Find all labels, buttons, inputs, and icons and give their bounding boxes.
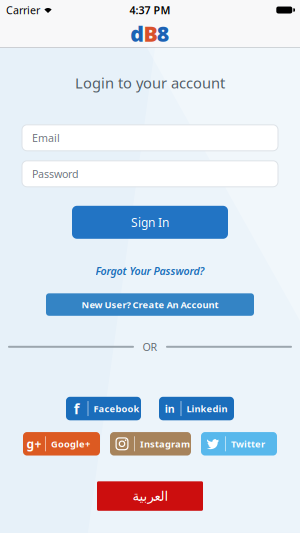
staticText: Sign In — [131, 214, 169, 230]
staticText: 8 — [157, 19, 170, 48]
staticText: Linkedin — [186, 402, 227, 415]
staticText: B — [143, 19, 157, 48]
staticText: Forgot Your Password? — [95, 264, 204, 278]
staticText: العربية — [132, 488, 168, 504]
staticText: Facebook — [93, 402, 139, 415]
staticText: in — [165, 401, 175, 416]
staticText: Login to your account — [75, 73, 225, 93]
staticText: f — [74, 399, 80, 418]
button[interactable]: in — [159, 397, 234, 420]
staticText: Google+ — [51, 438, 90, 450]
staticText: Instagram — [140, 438, 190, 450]
button[interactable]: Sign In — [72, 206, 228, 239]
button[interactable]: Instagram — [110, 432, 191, 456]
staticText: Carrier — [6, 3, 40, 17]
staticText: 4:37 PM — [129, 3, 170, 17]
staticText: New User? Create An Account — [81, 298, 218, 311]
staticText: Password — [32, 167, 79, 181]
button[interactable]: f — [66, 397, 141, 420]
staticText: Twitter — [231, 438, 265, 450]
button[interactable]: Forgot Your Password? — [95, 264, 204, 278]
staticText: g+ — [26, 436, 41, 452]
staticText: OR — [142, 340, 157, 354]
staticText: d — [130, 19, 144, 48]
staticText: Email — [32, 131, 60, 145]
button[interactable]: Twitter — [201, 432, 277, 456]
button[interactable]: New User? Create An Account — [46, 293, 254, 316]
button[interactable]: العربية — [97, 481, 203, 511]
button[interactable]: g+ — [23, 432, 100, 456]
